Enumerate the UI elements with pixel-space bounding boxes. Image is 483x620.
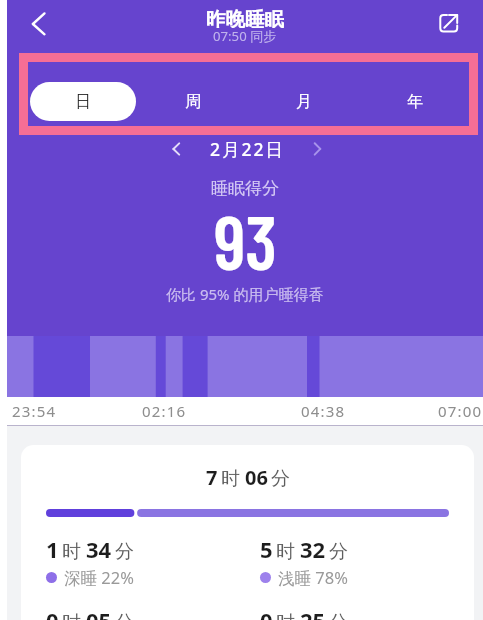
staticText: 分 xyxy=(115,540,134,564)
staticText: 02:16 xyxy=(142,401,187,421)
staticText: 分 xyxy=(271,467,290,491)
staticText: 睡眠得分 xyxy=(211,178,279,199)
staticText: 05 xyxy=(86,605,112,620)
staticText: 时 xyxy=(276,611,295,620)
staticText: 时 xyxy=(62,611,81,620)
button[interactable]: Next day xyxy=(307,134,337,164)
button[interactable]: 周 xyxy=(138,82,248,121)
staticText: 日 xyxy=(75,92,91,112)
staticText: 07:00 xyxy=(438,401,483,421)
staticText: 0 xyxy=(46,605,59,620)
staticText: 分 xyxy=(329,611,348,620)
staticText: 时 xyxy=(62,540,81,564)
staticText: 93 xyxy=(214,196,277,274)
staticText: 月 xyxy=(296,92,312,112)
staticText: 时 xyxy=(276,540,295,564)
staticText: 年 xyxy=(407,92,423,112)
staticText: 7 xyxy=(206,464,218,491)
staticText: 07:50 同步 xyxy=(213,27,277,44)
button[interactable]: 日 xyxy=(28,82,138,121)
staticText: 2月22日 xyxy=(210,137,286,161)
staticText: 1 xyxy=(46,534,59,564)
staticText: 昨晚睡眠 xyxy=(206,7,284,28)
staticText: 你比 95% 的用户睡得香 xyxy=(166,284,324,304)
staticText: 分 xyxy=(115,611,134,620)
button[interactable]: 月 xyxy=(248,82,359,121)
button[interactable]: Previous day xyxy=(166,134,196,164)
staticText: 周 xyxy=(185,92,201,112)
staticText: 时 xyxy=(221,467,240,491)
staticText: 0 xyxy=(260,605,273,620)
staticText: 06 xyxy=(245,464,268,491)
staticText: 23:54 xyxy=(12,401,57,421)
staticText: 32 xyxy=(300,534,326,564)
button[interactable]: Share xyxy=(435,0,473,38)
staticText: 浅睡 78% xyxy=(278,566,348,589)
staticText: 04:38 xyxy=(301,401,346,421)
button[interactable]: 年 xyxy=(359,82,470,121)
staticText: 34 xyxy=(86,534,112,564)
staticText: 25 xyxy=(300,605,326,620)
button[interactable]: Back xyxy=(13,0,59,46)
staticText: 5 xyxy=(260,534,273,564)
staticText: 深睡 22% xyxy=(64,566,134,589)
staticText: 分 xyxy=(329,540,348,564)
